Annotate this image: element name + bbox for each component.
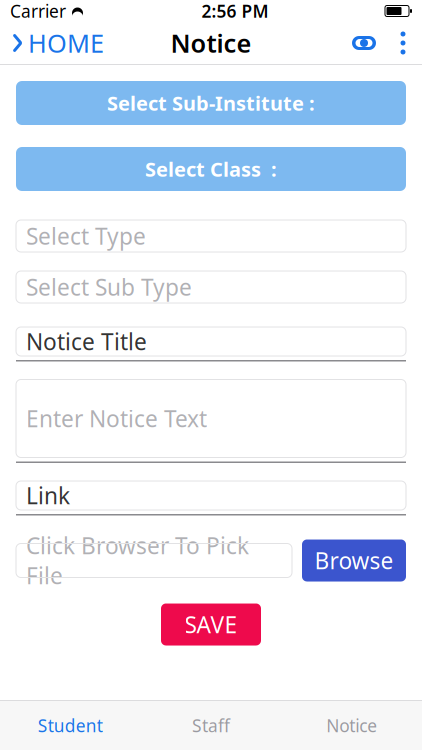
staticText: 2:56 PM xyxy=(201,0,268,22)
staticText: Select Class : xyxy=(145,156,277,182)
button[interactable]: More options xyxy=(384,23,422,63)
staticText: Enter Notice Text xyxy=(26,403,207,433)
staticText: Link xyxy=(26,480,70,510)
button[interactable]: Student xyxy=(0,701,141,750)
staticText: Notice xyxy=(170,26,251,60)
staticText: SAVE xyxy=(184,609,237,639)
staticText: Carrier xyxy=(10,0,66,22)
button[interactable]: Notice xyxy=(281,701,422,750)
staticText: Click Browser To Pick File xyxy=(26,530,249,591)
staticText: Select Sub-Institute : xyxy=(107,90,315,116)
button[interactable]: HOME xyxy=(0,23,116,63)
button[interactable]: Preview xyxy=(344,23,384,63)
button[interactable]: Browse xyxy=(302,539,406,581)
button[interactable]: Select Class : xyxy=(16,147,406,191)
staticText: Staff xyxy=(192,714,230,737)
staticText: Select Type xyxy=(26,221,146,251)
staticText: HOME xyxy=(28,26,104,60)
button[interactable]: Select Sub-Institute : xyxy=(16,81,406,125)
staticText: Notice xyxy=(326,714,377,737)
button[interactable]: SAVE xyxy=(161,603,261,645)
staticText: Notice Title xyxy=(26,326,147,356)
staticText: Select Sub Type xyxy=(26,272,192,302)
staticText: Browse xyxy=(314,545,393,575)
button[interactable]: Staff xyxy=(141,701,281,750)
staticText: Student xyxy=(38,714,103,737)
